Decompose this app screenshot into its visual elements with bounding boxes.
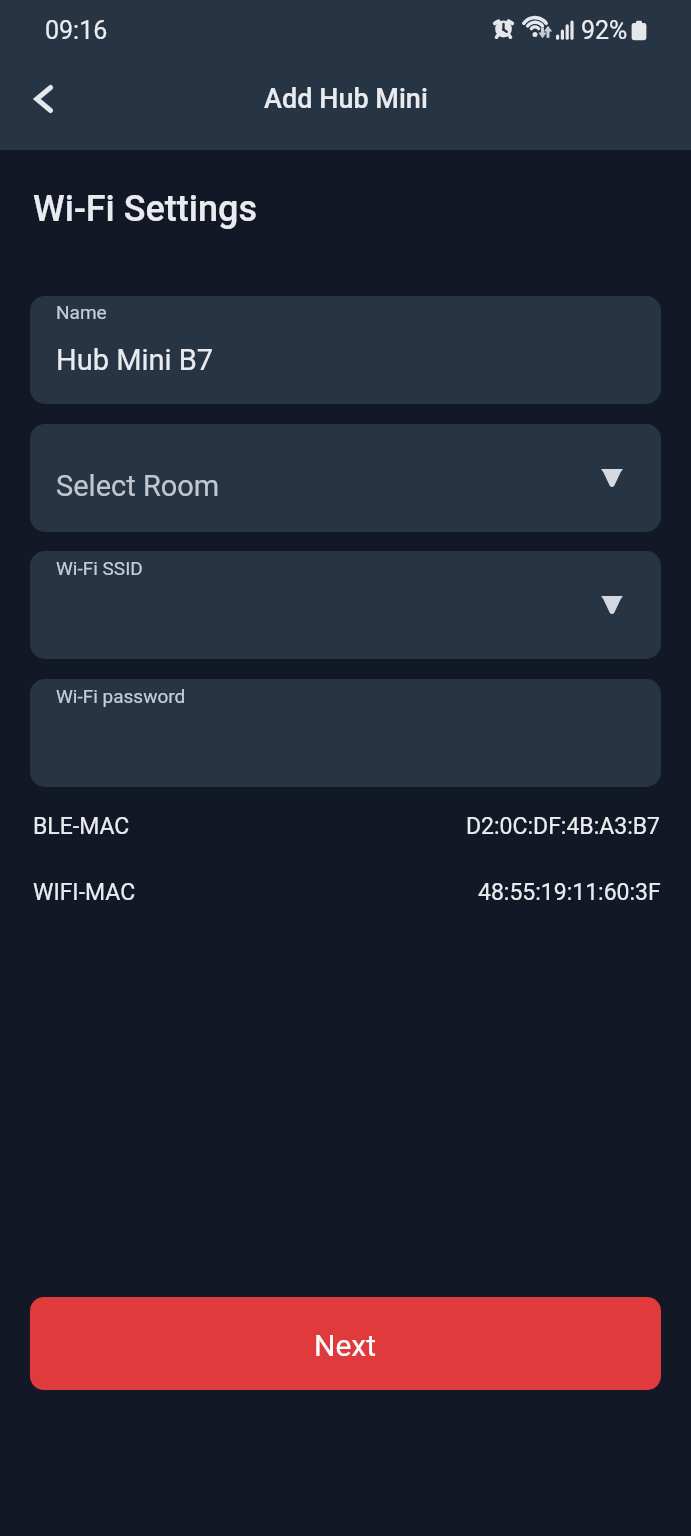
- staticText: Wi-Fi password: [56, 685, 186, 707]
- staticText: WIFI-MAC: [33, 879, 136, 906]
- button[interactable]: Select Room: [30, 424, 661, 532]
- staticText: D2:0C:DF:4B:A3:B7: [466, 813, 661, 840]
- staticText: Wi-Fi Settings: [33, 188, 257, 230]
- button[interactable]: Next: [30, 1297, 661, 1390]
- button[interactable]: Open list: [595, 588, 629, 622]
- button[interactable]: Wi-Fi password: [30, 679, 661, 787]
- staticText: 09:16: [45, 16, 108, 45]
- staticText: Name: [56, 301, 107, 323]
- staticText: 92%: [581, 16, 628, 45]
- staticText: Next: [314, 1328, 377, 1363]
- button[interactable]: Wi-Fi SSID: [30, 551, 661, 659]
- button[interactable]: Back: [13, 65, 81, 133]
- staticText: Hub Mini B7: [56, 343, 214, 377]
- button[interactable]: Open list: [595, 461, 629, 495]
- staticText: 48:55:19:11:60:3F: [478, 879, 661, 906]
- staticText: BLE-MAC: [33, 813, 130, 840]
- staticText: Add Hub Mini: [264, 83, 428, 115]
- button[interactable]: Name: [30, 296, 661, 404]
- staticText: Wi-Fi SSID: [56, 557, 143, 579]
- staticText: Select Room: [56, 469, 220, 503]
